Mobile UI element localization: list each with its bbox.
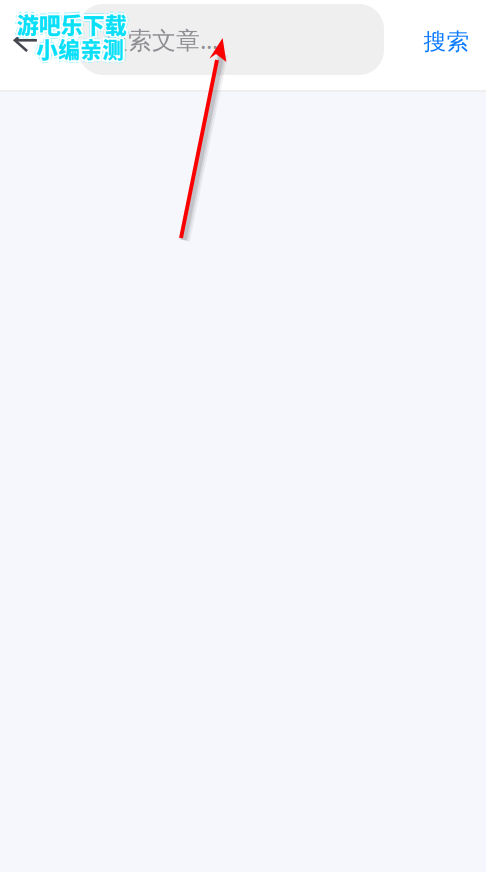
staticText: 搜索 [424,28,470,55]
button[interactable]: 搜索 [407,0,486,90]
button[interactable]: 搜索文章... [78,4,384,75]
staticText: 搜索文章... [104,24,218,56]
button[interactable]: 返回 [0,0,62,90]
